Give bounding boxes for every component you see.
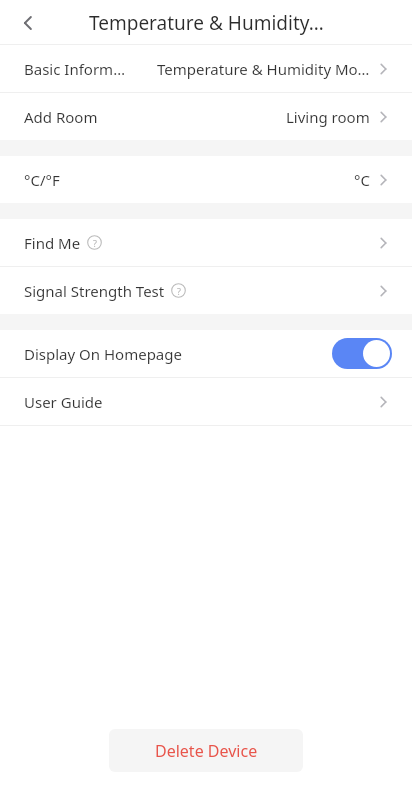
staticText: Temperature & Humidity…	[89, 10, 324, 36]
staticText: Signal Strength Test	[24, 281, 165, 301]
staticText: Living room	[286, 107, 370, 127]
button[interactable]: Signal Strength Test	[0, 267, 412, 314]
button[interactable]: Display On Homepage	[0, 330, 412, 377]
staticText: User Guide	[24, 392, 103, 412]
button[interactable]: Find Me	[0, 219, 412, 266]
staticText: Delete Device	[155, 740, 258, 762]
button[interactable]: Basic Inform…	[0, 45, 412, 92]
button[interactable]: Add Room	[0, 93, 412, 140]
staticText: °C/°F	[24, 170, 139, 190]
button[interactable]: °C/°F	[0, 156, 412, 203]
button[interactable]: Display On Homepage toggle	[332, 338, 392, 369]
staticText: Add Room	[24, 107, 139, 127]
staticText: Temperature & Humidity Mo…	[157, 59, 370, 79]
staticText: Basic Inform…	[24, 59, 139, 79]
button[interactable]: Back	[10, 5, 46, 41]
staticText: ?	[93, 237, 97, 249]
staticText: ?	[177, 285, 181, 297]
button[interactable]: User Guide	[0, 378, 412, 425]
staticText: Display On Homepage	[24, 344, 182, 364]
staticText: °C	[354, 170, 370, 190]
button[interactable]: Delete Device	[109, 729, 303, 772]
staticText: Find Me	[24, 233, 81, 253]
